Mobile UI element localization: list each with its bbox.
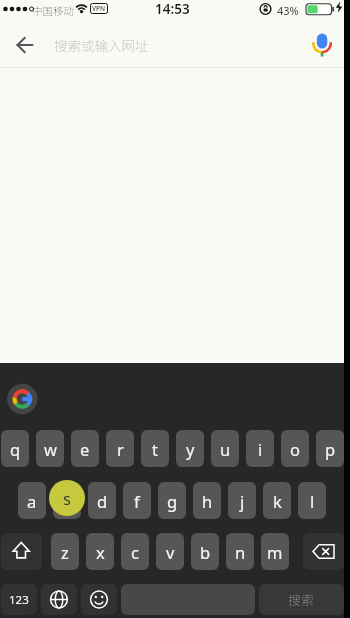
button[interactable]: a bbox=[18, 482, 46, 519]
staticText: w bbox=[44, 438, 57, 460]
staticText: l bbox=[310, 490, 315, 512]
button[interactable] bbox=[81, 584, 117, 615]
button[interactable] bbox=[7, 384, 38, 415]
button[interactable]: 123 bbox=[1, 584, 37, 615]
staticText: x bbox=[96, 541, 105, 563]
button[interactable]: m bbox=[261, 533, 289, 570]
staticText: s bbox=[63, 487, 71, 509]
button[interactable]: p bbox=[316, 430, 344, 467]
button[interactable]: l bbox=[298, 482, 326, 519]
button[interactable]: t bbox=[141, 430, 169, 467]
button[interactable]: 搜索 bbox=[259, 584, 344, 615]
staticText: v bbox=[166, 541, 175, 563]
staticText: o bbox=[290, 438, 300, 460]
staticText: p bbox=[325, 438, 336, 460]
staticText: m bbox=[267, 541, 283, 563]
button[interactable]: g bbox=[158, 482, 186, 519]
button[interactable]: u bbox=[211, 430, 239, 467]
staticText: r bbox=[117, 438, 124, 460]
staticText: z bbox=[61, 541, 69, 563]
button[interactable] bbox=[41, 584, 77, 615]
staticText: a bbox=[27, 490, 37, 512]
button[interactable]: e bbox=[71, 430, 99, 467]
staticText: e bbox=[80, 438, 90, 460]
staticText: d bbox=[97, 490, 108, 512]
button[interactable]: f bbox=[123, 482, 151, 519]
button[interactable]: b bbox=[191, 533, 219, 570]
staticText: 14:53 bbox=[155, 0, 190, 18]
button[interactable]: i bbox=[246, 430, 274, 467]
button[interactable] bbox=[53, 482, 81, 519]
button[interactable]: x bbox=[86, 533, 114, 570]
button[interactable]: w bbox=[36, 430, 64, 467]
button[interactable]: r bbox=[106, 430, 134, 467]
staticText: h bbox=[202, 490, 213, 512]
button[interactable] bbox=[305, 27, 339, 63]
staticText: 43% bbox=[277, 3, 299, 18]
staticText: 搜索 bbox=[288, 590, 315, 609]
button[interactable]: o bbox=[281, 430, 309, 467]
staticText: y bbox=[186, 438, 195, 460]
button[interactable]: n bbox=[226, 533, 254, 570]
button[interactable] bbox=[303, 533, 344, 570]
button[interactable]: y bbox=[176, 430, 204, 467]
staticText: b bbox=[200, 541, 211, 563]
button[interactable] bbox=[1, 533, 42, 570]
staticText: k bbox=[273, 490, 282, 512]
button[interactable] bbox=[0, 19, 344, 68]
staticText: g bbox=[167, 490, 178, 512]
staticText: c bbox=[131, 541, 139, 563]
button[interactable]: d bbox=[88, 482, 116, 519]
staticText: t bbox=[152, 438, 158, 460]
button[interactable]: k bbox=[263, 482, 291, 519]
staticText: i bbox=[258, 438, 263, 460]
button[interactable]: j bbox=[228, 482, 256, 519]
staticText: VPN bbox=[92, 4, 106, 13]
button[interactable]: h bbox=[193, 482, 221, 519]
staticText: 中国移动 bbox=[32, 3, 74, 18]
staticText: n bbox=[235, 541, 246, 563]
staticText: u bbox=[220, 438, 231, 460]
button[interactable] bbox=[8, 30, 44, 60]
button[interactable]: q bbox=[1, 430, 29, 467]
staticText: q bbox=[10, 438, 21, 460]
staticText: f bbox=[134, 490, 140, 512]
button[interactable]: c bbox=[121, 533, 149, 570]
button[interactable]: z bbox=[51, 533, 79, 570]
staticText: 123 bbox=[9, 592, 29, 608]
staticText: 搜索或输入网址 bbox=[54, 35, 149, 55]
staticText: j bbox=[240, 490, 245, 512]
button[interactable]: v bbox=[156, 533, 184, 570]
